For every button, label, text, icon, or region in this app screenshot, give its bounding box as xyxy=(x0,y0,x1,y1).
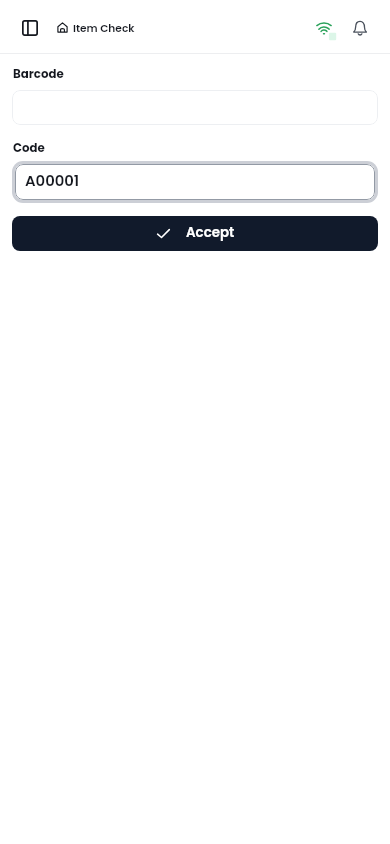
staticText: Barcode xyxy=(13,66,64,83)
button[interactable]: Home xyxy=(57,22,68,33)
staticText: A00001 xyxy=(25,170,80,191)
button[interactable]: Network status xyxy=(312,20,336,44)
button[interactable]: Notifications xyxy=(348,16,372,40)
button[interactable] xyxy=(12,90,378,125)
staticText: Code xyxy=(13,140,45,157)
button[interactable]: Accept xyxy=(12,216,378,251)
staticText: Accept xyxy=(186,223,235,242)
staticText: Item Check xyxy=(73,21,135,36)
button[interactable]: A00001 xyxy=(15,164,375,200)
button[interactable]: Toggle sidebar xyxy=(22,20,38,36)
